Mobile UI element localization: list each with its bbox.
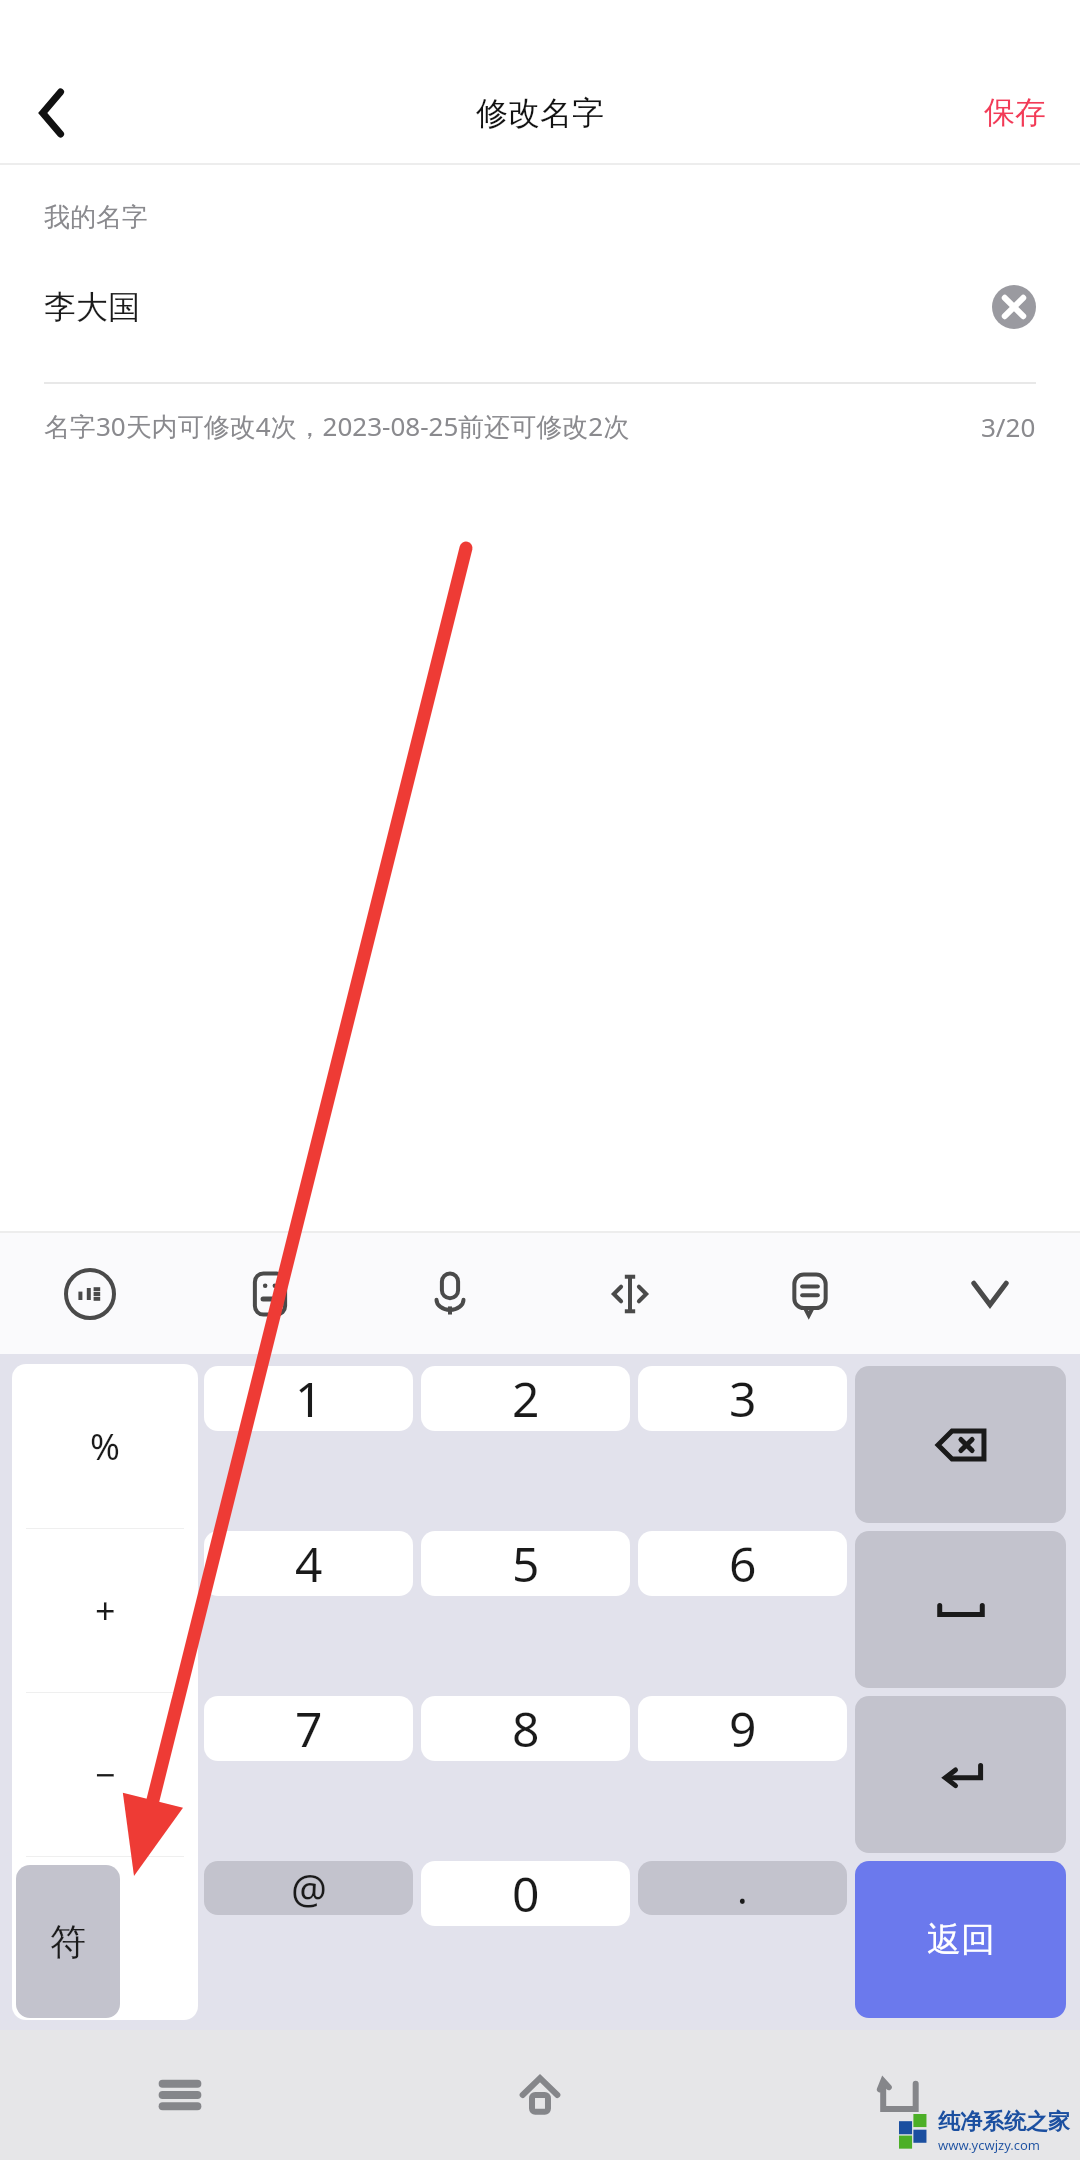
button[interactable]: / (12, 1857, 198, 2020)
button[interactable]: 符 (16, 1865, 120, 2018)
staticText: 纯净系统之家 (938, 2108, 1070, 2136)
button[interactable]: Keyboard layout (180, 1233, 360, 1354)
staticText: 9 (729, 1696, 757, 1761)
button[interactable]: Enter (855, 1696, 1066, 1853)
button[interactable]: @ (204, 1861, 413, 1915)
button[interactable]: − (12, 1693, 198, 1856)
staticText: 3/20 (981, 409, 1036, 444)
staticText: 7 (295, 1696, 323, 1761)
button[interactable]: 4 (204, 1531, 413, 1596)
staticText: 2 (512, 1366, 540, 1431)
button[interactable]: Hide keyboard (900, 1233, 1080, 1354)
staticText: 我的名字 (44, 201, 148, 234)
button[interactable]: Clear (992, 285, 1036, 329)
staticText: 5 (512, 1531, 540, 1596)
staticText: 名字30天内可修改4次，2023-08-25前还可修改2次 (44, 408, 981, 444)
button[interactable]: 保存 (978, 83, 1052, 142)
button[interactable]: 8 (421, 1696, 630, 1761)
button[interactable]: 5 (421, 1531, 630, 1596)
button[interactable]: 3 (638, 1366, 847, 1431)
button[interactable]: 1 (204, 1366, 413, 1431)
button[interactable]: Back (720, 2030, 1080, 2160)
button[interactable]: Home (360, 2030, 720, 2160)
staticText: 修改名字 (476, 93, 604, 133)
button[interactable]: 9 (638, 1696, 847, 1761)
staticText: www.ycwjzy.com (938, 2136, 1041, 2154)
button[interactable]: 返回 (855, 1861, 1066, 2018)
button[interactable]: Recents (0, 2030, 360, 2160)
staticText: 3 (729, 1366, 757, 1431)
staticText: 4 (295, 1531, 323, 1596)
button[interactable]: Input method (0, 1233, 180, 1354)
staticText: 1 (295, 1366, 323, 1431)
staticText: − (95, 1750, 116, 1799)
button[interactable]: 2 (421, 1366, 630, 1431)
staticText: 8 (512, 1696, 540, 1761)
button[interactable]: Backspace (855, 1366, 1066, 1523)
button[interactable]: Back (10, 71, 94, 155)
staticText: 6 (729, 1531, 757, 1596)
button[interactable]: Cursor control (540, 1233, 720, 1354)
button[interactable]: 6 (638, 1531, 847, 1596)
button[interactable]: Voice input (360, 1233, 540, 1354)
staticText: 0 (512, 1861, 540, 1926)
button[interactable]: 0 (421, 1861, 630, 1926)
button[interactable]: Messages (720, 1233, 900, 1354)
button[interactable]: + (12, 1529, 198, 1692)
button[interactable]: 7 (204, 1696, 413, 1761)
button[interactable]: % (12, 1364, 198, 1528)
staticText: % (90, 1422, 120, 1471)
staticText: 李大国 (44, 287, 992, 327)
staticText: 符 (50, 1919, 86, 1964)
button[interactable]: Space (855, 1531, 1066, 1688)
staticText: + (95, 1586, 116, 1635)
staticText: 返回 (927, 1918, 995, 1961)
staticText: . (737, 1861, 748, 1915)
staticText: 保存 (984, 93, 1046, 132)
button[interactable]: . (638, 1861, 847, 1915)
staticText: @ (291, 1861, 327, 1915)
